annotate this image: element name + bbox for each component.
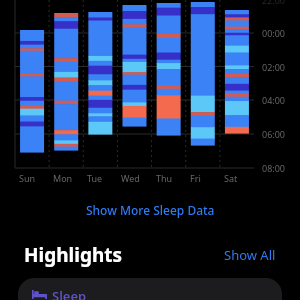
staticText: 02:00 bbox=[262, 61, 286, 73]
staticText: 04:00 bbox=[262, 94, 286, 106]
staticText: Highlights bbox=[24, 242, 123, 268]
staticText: 22:00 bbox=[262, 0, 286, 6]
staticText: Tue bbox=[87, 172, 103, 184]
staticText: Sun bbox=[19, 172, 36, 184]
button[interactable]: Show All bbox=[224, 246, 276, 264]
staticText: 06:00 bbox=[262, 128, 286, 140]
staticText: Mon bbox=[53, 172, 73, 184]
staticText: Thu bbox=[156, 172, 173, 184]
staticText: Show More Sleep Data bbox=[86, 202, 215, 218]
staticText: Sleep bbox=[52, 287, 87, 300]
staticText: Fri bbox=[190, 172, 201, 184]
staticText: 00:00 bbox=[262, 27, 286, 39]
staticText: Show All bbox=[224, 246, 276, 264]
button[interactable]: Show More Sleep Data bbox=[0, 196, 300, 224]
other: Sleep bbox=[32, 288, 47, 299]
button[interactable]: Sleep bbox=[18, 278, 282, 300]
staticText: Sat bbox=[224, 172, 238, 184]
staticText: 08:00 bbox=[262, 162, 286, 174]
staticText: Wed bbox=[121, 172, 140, 184]
